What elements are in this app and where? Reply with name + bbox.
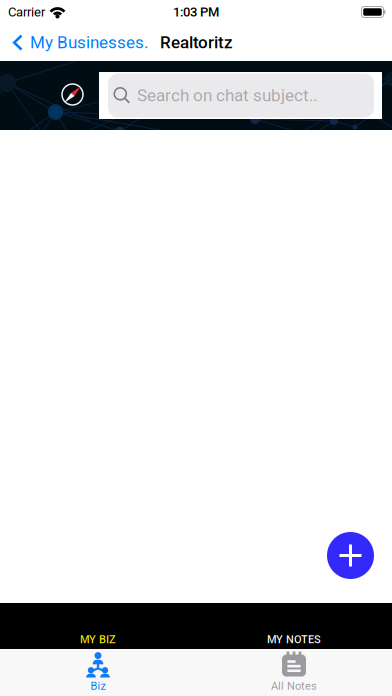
button[interactable]: Add: [327, 532, 374, 579]
staticText: MY BIZ: [80, 633, 116, 646]
staticText: MY NOTES: [267, 633, 321, 646]
button[interactable]: All Notes: [196, 649, 392, 696]
staticText: Search on chat subject..: [137, 85, 317, 105]
staticText: All Notes: [271, 680, 317, 692]
staticText: My Businesses.: [30, 32, 148, 52]
button[interactable]: Biz: [0, 649, 196, 696]
staticText: Biz: [90, 680, 105, 692]
staticText: Carrier: [8, 4, 45, 20]
button[interactable]: Realtoritz: [156, 24, 237, 61]
staticText: Realtoritz: [160, 32, 233, 52]
staticText: 1:03 PM: [173, 4, 219, 20]
button[interactable]: My Businesses.: [0, 24, 156, 61]
button[interactable]: Search on chat subject..: [108, 73, 374, 117]
